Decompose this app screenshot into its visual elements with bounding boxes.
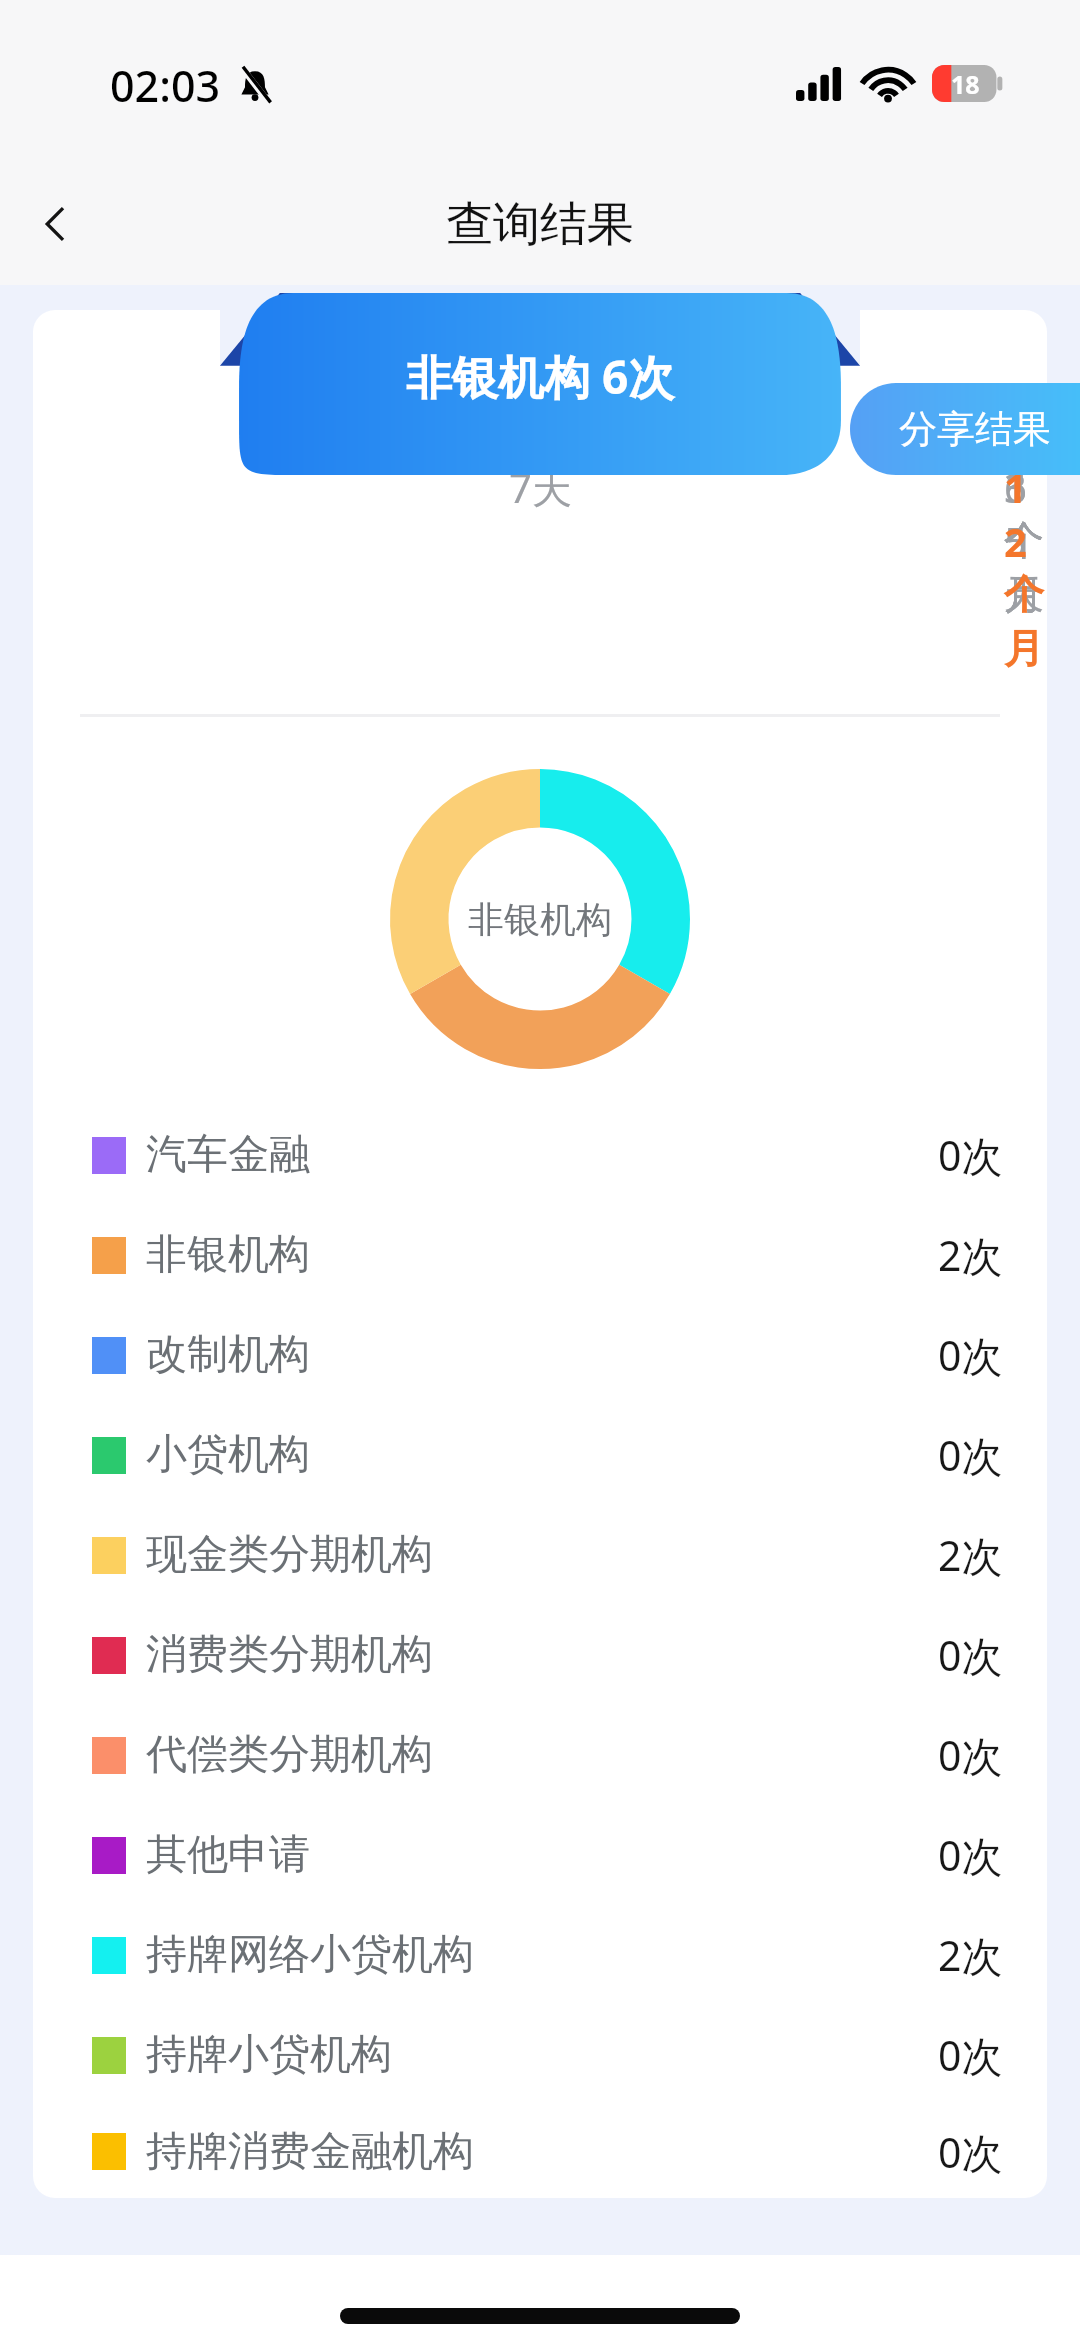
staticText: 0次 [938, 1427, 1003, 1483]
staticText: 7天 [509, 460, 572, 515]
staticText: 02:03 [110, 56, 221, 115]
button[interactable]: 其他申请 [33, 1805, 1047, 1905]
button[interactable]: 代偿类分期机构 [33, 1705, 1047, 1805]
button[interactable]: 分享结果 [850, 383, 1080, 475]
staticText: 持牌小贷机构 [146, 2029, 392, 2081]
staticText: 汽车金融 [146, 1129, 310, 1181]
staticText: 小贷机构 [146, 1429, 310, 1481]
button[interactable]: Back [0, 163, 112, 285]
button[interactable]: 现金类分期机构 [33, 1505, 1047, 1605]
staticText: 非银机构 [146, 1229, 310, 1281]
button[interactable]: 改制机构 [33, 1305, 1047, 1405]
button[interactable]: 汽车金融 [33, 1105, 1047, 1205]
staticText: 2次 [938, 1927, 1003, 1983]
staticText: 0次 [938, 1127, 1003, 1183]
staticText: 查询结果 [446, 195, 634, 254]
staticText: 18 [951, 67, 980, 101]
staticText: 分享结果 [899, 405, 1051, 453]
staticText: 其他申请 [146, 1829, 310, 1881]
staticText: 现金类分期机构 [146, 1529, 433, 1581]
button[interactable]: 消费类分期机构 [33, 1605, 1047, 1705]
staticText: 2次 [938, 1527, 1003, 1583]
button[interactable]: 持牌消费金融机构 [33, 2105, 1047, 2198]
staticText: 消费类分期机构 [146, 1629, 433, 1681]
staticText: 0次 [938, 2124, 1003, 2180]
button[interactable]: 非银机构 [33, 1205, 1047, 1305]
staticText: 2次 [938, 1227, 1003, 1283]
staticText: 0次 [938, 1827, 1003, 1883]
staticText: 0次 [938, 1327, 1003, 1383]
button[interactable]: 持牌网络小贷机构 [33, 1905, 1047, 2005]
staticText: 0次 [938, 1727, 1003, 1783]
staticText: 持牌消费金融机构 [146, 2126, 474, 2178]
staticText: 0次 [938, 2027, 1003, 2083]
button[interactable]: 小贷机构 [33, 1405, 1047, 1505]
staticText: 非银机构 [468, 897, 612, 942]
staticText: 持牌网络小贷机构 [146, 1929, 474, 1981]
button[interactable] [220, 293, 860, 475]
staticText: 代偿类分期机构 [146, 1729, 433, 1781]
button[interactable]: 持牌小贷机构 [33, 2005, 1047, 2105]
staticText: 0次 [938, 1627, 1003, 1683]
staticText: 非银机构 6次 [406, 345, 675, 408]
button[interactable]: 7天 [80, 460, 1000, 558]
staticText: 改制机构 [146, 1329, 310, 1381]
